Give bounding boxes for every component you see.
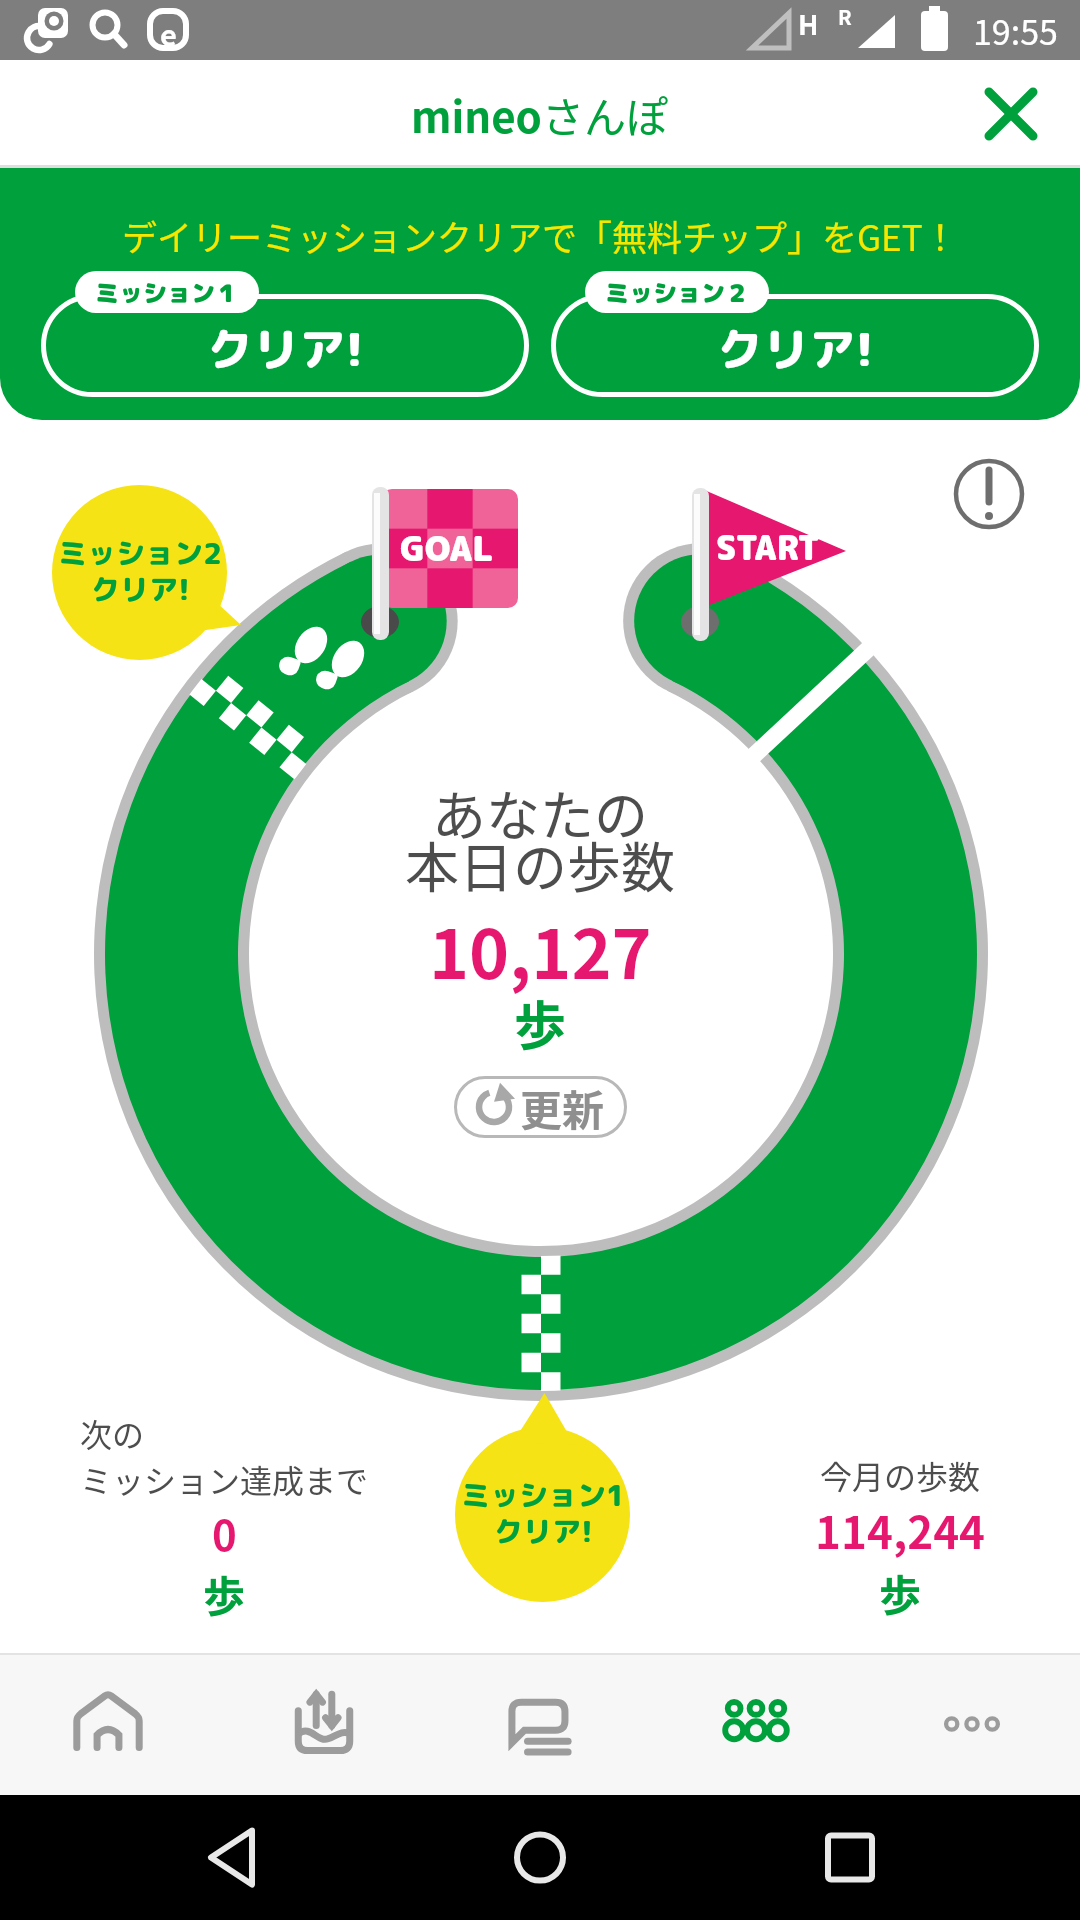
button[interactable]: クリア! xyxy=(41,271,529,397)
button[interactable]: 更新 xyxy=(454,1076,627,1138)
staticText: ミッション達成まで xyxy=(80,1456,369,1502)
staticText: e xyxy=(160,12,177,54)
staticText: ミッション２ xyxy=(605,276,749,309)
button[interactable]: More xyxy=(864,1653,1080,1795)
staticText: デイリーミッションクリアで「無料チップ」をGET！ xyxy=(122,210,958,261)
staticText: 114,244 xyxy=(815,1498,986,1562)
staticText: ミッション1 xyxy=(461,1475,625,1515)
staticText: ミッション１ xyxy=(95,276,239,309)
staticText: mineo xyxy=(411,84,542,145)
staticText: 歩 xyxy=(879,1562,922,1623)
staticText: 次の xyxy=(80,1410,145,1456)
button[interactable]: Close xyxy=(968,71,1054,157)
staticText: さんぽ xyxy=(542,84,669,145)
staticText: クリア! xyxy=(717,317,874,381)
staticText: 歩 xyxy=(203,1563,246,1624)
staticText: クリア! xyxy=(207,317,364,381)
staticText: 19:55 xyxy=(973,6,1058,55)
button[interactable]: Recent apps xyxy=(805,1813,895,1903)
staticText: 0 xyxy=(212,1502,237,1563)
staticText: クリア! xyxy=(494,1511,593,1551)
staticText: START xyxy=(716,525,820,571)
staticText: 歩 xyxy=(514,985,567,1060)
button[interactable]: Home xyxy=(495,1813,585,1903)
button[interactable]: Community xyxy=(648,1653,864,1795)
staticText: ミッション2 xyxy=(58,533,222,573)
staticText: H xyxy=(798,4,819,43)
staticText: クリア! xyxy=(91,569,190,609)
staticText: R xyxy=(838,2,852,31)
button[interactable]: Chat xyxy=(432,1653,648,1795)
staticText: あなたの xyxy=(432,773,648,851)
button[interactable]: クリア! xyxy=(551,271,1039,397)
staticText: 10,127 xyxy=(429,900,652,998)
staticText: 今月の歩数 xyxy=(820,1452,981,1498)
staticText: 更新 xyxy=(520,1077,605,1138)
button[interactable]: Info xyxy=(953,458,1025,530)
staticText: GOAL xyxy=(400,524,494,571)
staticText: 本日の歩数 xyxy=(405,825,675,903)
button[interactable]: Back xyxy=(186,1813,276,1903)
button[interactable]: Data xyxy=(216,1653,432,1795)
button[interactable]: Home xyxy=(0,1653,216,1795)
